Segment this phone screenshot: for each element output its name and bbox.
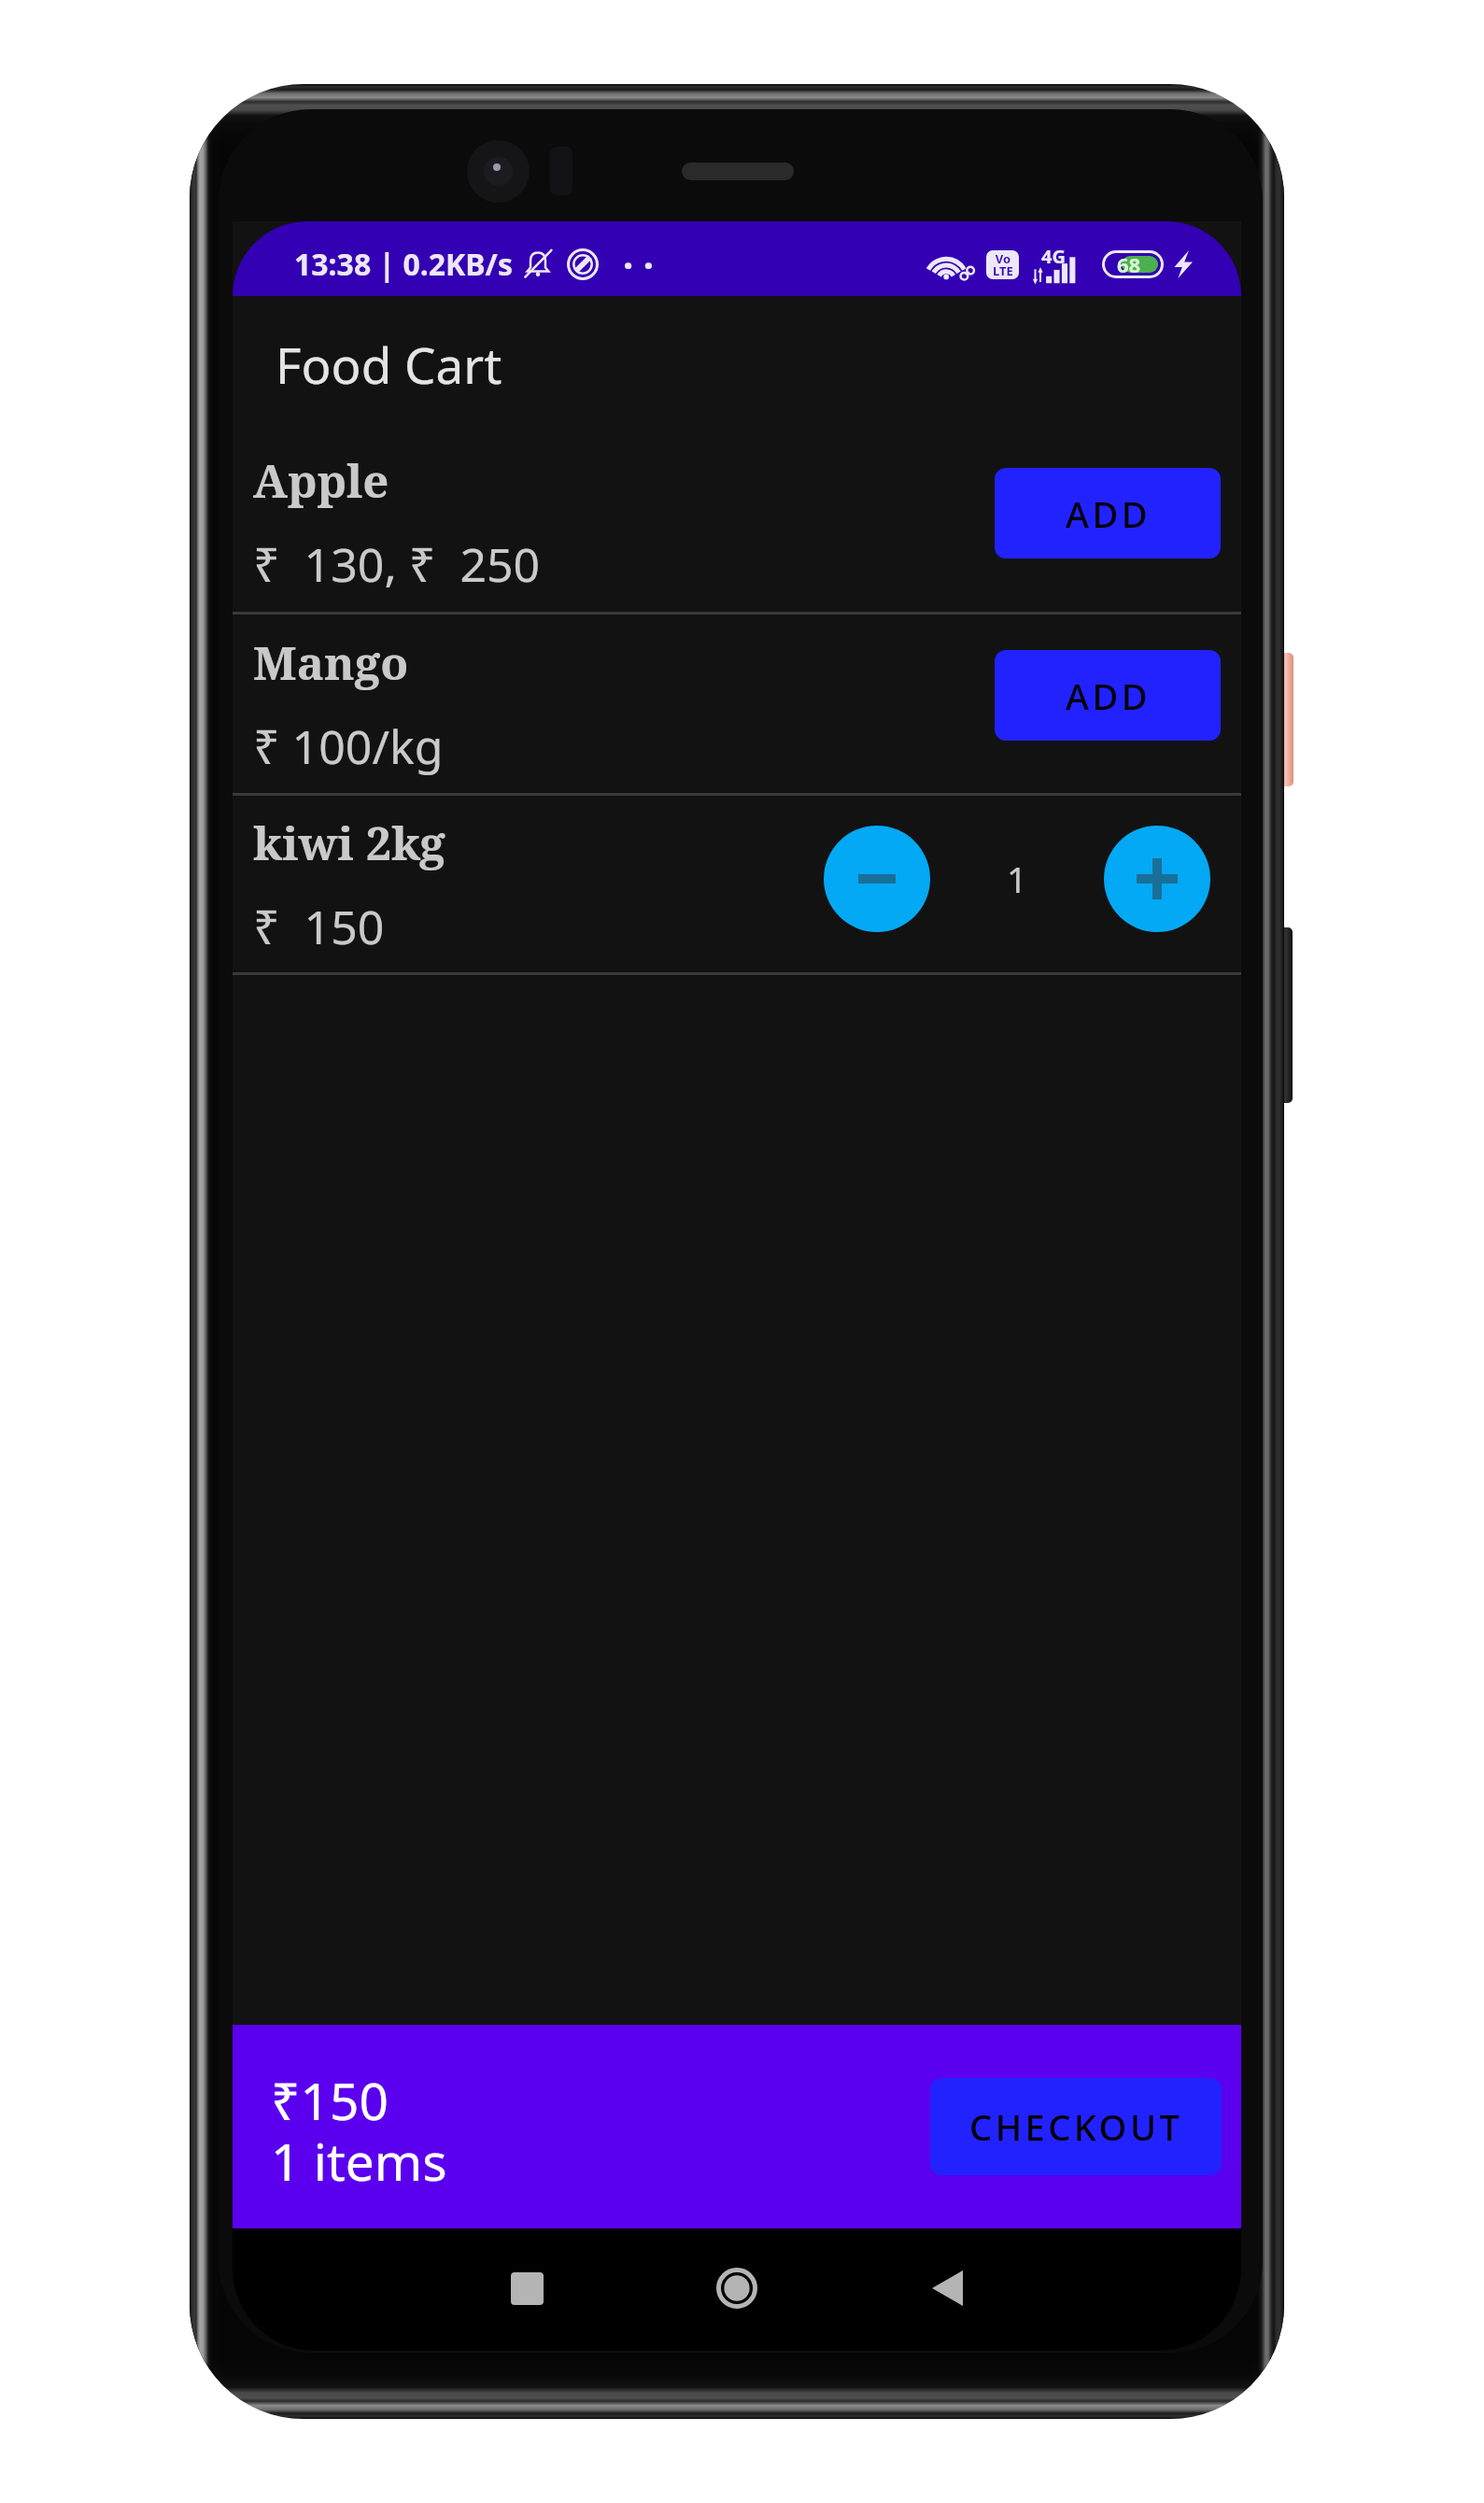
button[interactable]: kiwi 2kg — [233, 796, 1241, 972]
staticText: 1 — [1007, 855, 1027, 903]
button[interactable]: ADD — [995, 650, 1221, 741]
staticText: Mango — [253, 631, 409, 694]
button[interactable]: Back — [896, 2237, 998, 2340]
button[interactable]: ADD — [995, 468, 1221, 559]
staticText: Vo LTE — [993, 250, 1013, 279]
button[interactable]: Home — [685, 2237, 788, 2340]
button[interactable]: CHECKOUT — [930, 2078, 1222, 2175]
staticText: ₹ 150 — [253, 895, 385, 958]
staticText: Apple — [253, 449, 389, 512]
staticText: ₹ 130, ₹ 250 — [253, 532, 541, 596]
staticText: ₹150 1 items — [271, 2065, 447, 2196]
staticText: CHECKOUT — [969, 2102, 1183, 2151]
staticText: · · — [623, 239, 654, 290]
staticText: 68 — [1117, 250, 1141, 278]
staticText: 4G — [1041, 244, 1066, 269]
button[interactable]: Increase quantity — [1104, 826, 1210, 932]
button[interactable]: Apple — [233, 431, 1241, 612]
button[interactable]: Decrease quantity — [824, 826, 930, 932]
staticText: ₹ 100/kg — [253, 714, 444, 778]
button[interactable]: Recents — [475, 2237, 578, 2340]
button[interactable]: Mango — [233, 615, 1241, 793]
staticText: kiwi 2kg — [253, 812, 445, 874]
staticText: ADD — [1066, 489, 1151, 538]
staticText: 13:38 | 0.2KB/s — [294, 244, 513, 285]
staticText: ADD — [1066, 672, 1151, 720]
staticText: Food Cart — [276, 331, 502, 398]
